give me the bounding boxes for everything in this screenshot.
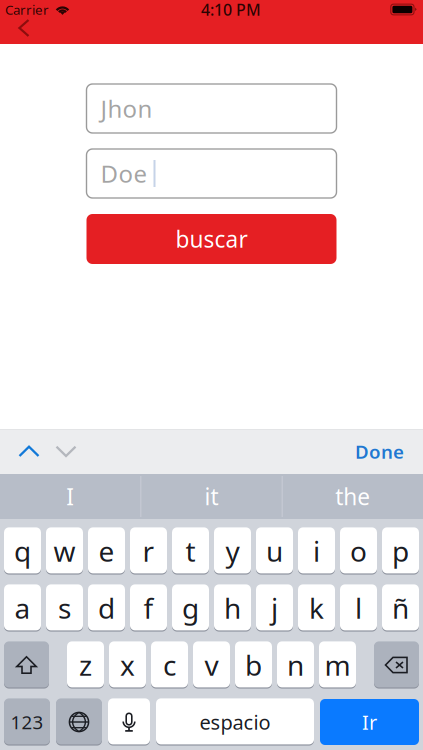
button[interactable]: Delete <box>374 642 419 688</box>
staticText: h <box>224 589 241 627</box>
button[interactable]: r <box>130 528 167 574</box>
staticText: p <box>392 532 409 570</box>
button[interactable]: n <box>277 642 314 688</box>
staticText: Jhon <box>100 93 152 124</box>
staticText: t <box>185 532 195 570</box>
staticText: 4:10 PM <box>201 0 261 20</box>
staticText: the <box>335 481 370 511</box>
button[interactable]: x <box>109 642 146 688</box>
button[interactable]: v <box>193 642 230 688</box>
staticText: z <box>79 646 92 684</box>
button[interactable]: d <box>88 585 125 631</box>
button[interactable]: j <box>256 585 293 631</box>
button[interactable]: Dictate <box>108 699 150 745</box>
staticText: w <box>53 532 75 570</box>
staticText: u <box>266 532 283 570</box>
staticText: espacio <box>199 709 270 735</box>
button[interactable]: buscar <box>86 214 336 264</box>
button[interactable]: Shift <box>4 642 49 688</box>
staticText: i <box>313 532 320 570</box>
button[interactable]: p <box>382 528 419 574</box>
staticText: Ir <box>362 709 377 735</box>
button[interactable]: o <box>340 528 377 574</box>
button[interactable]: Done <box>355 429 423 474</box>
button[interactable]: u <box>256 528 293 574</box>
staticText: s <box>58 589 71 627</box>
staticText: v <box>204 646 218 684</box>
staticText: Done <box>355 439 404 464</box>
staticText: g <box>182 589 199 627</box>
staticText: buscar <box>175 224 247 254</box>
staticText: y <box>225 532 239 570</box>
staticText: j <box>271 589 278 627</box>
button[interactable]: y <box>214 528 251 574</box>
staticText: l <box>355 589 362 627</box>
staticText: Doe <box>100 158 147 189</box>
staticText: x <box>120 646 135 684</box>
button[interactable]: I <box>0 474 140 519</box>
staticText: q <box>14 532 31 570</box>
staticText: e <box>98 532 114 570</box>
staticText: d <box>98 589 115 627</box>
staticText: it <box>204 481 218 511</box>
button[interactable]: s <box>46 585 83 631</box>
button[interactable]: Previous field <box>8 429 50 474</box>
button[interactable]: k <box>298 585 335 631</box>
button[interactable]: ñ <box>382 585 419 631</box>
button[interactable]: the <box>283 474 423 519</box>
button[interactable]: i <box>298 528 335 574</box>
button[interactable]: Next field <box>50 429 82 474</box>
button[interactable]: a <box>4 585 41 631</box>
button[interactable]: w <box>46 528 83 574</box>
button[interactable]: b <box>235 642 272 688</box>
button[interactable]: Back <box>0 0 44 44</box>
button[interactable]: Next keyboard <box>56 699 102 745</box>
button[interactable]: m <box>319 642 356 688</box>
button[interactable]: t <box>172 528 209 574</box>
staticText: Carrier <box>5 1 49 18</box>
button[interactable]: f <box>130 585 167 631</box>
staticText: f <box>143 589 153 627</box>
staticText: 123 <box>10 710 43 734</box>
staticText: r <box>142 532 154 570</box>
staticText: n <box>287 646 304 684</box>
staticText: I <box>66 481 74 511</box>
button[interactable]: q <box>4 528 41 574</box>
staticText: c <box>163 646 176 684</box>
button[interactable]: g <box>172 585 209 631</box>
button[interactable]: h <box>214 585 251 631</box>
staticText: k <box>309 589 324 627</box>
staticText: o <box>350 532 367 570</box>
button[interactable]: l <box>340 585 377 631</box>
staticText: m <box>324 646 350 684</box>
button[interactable]: c <box>151 642 188 688</box>
button[interactable]: e <box>88 528 125 574</box>
button[interactable]: espacio <box>156 699 314 745</box>
staticText: a <box>14 589 30 627</box>
staticText: b <box>245 646 262 684</box>
button[interactable]: Ir <box>320 699 419 745</box>
button[interactable]: it <box>141 474 282 519</box>
staticText: ñ <box>392 589 409 627</box>
button[interactable]: z <box>67 642 104 688</box>
button[interactable]: 123 <box>4 699 50 745</box>
